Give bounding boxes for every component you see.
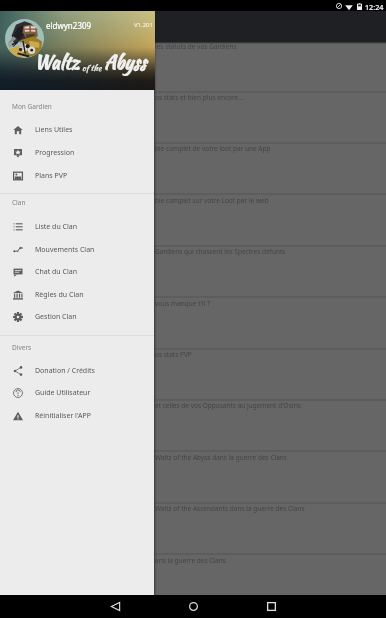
staticText: ble complet sur votre Loot par le web (155, 196, 269, 205)
button[interactable]: les statuts de vos Gardiens (0, 44, 386, 95)
button[interactable]: Chat du Clan (0, 260, 154, 283)
button[interactable]: Plans PVP (0, 164, 154, 187)
staticText: Divers (12, 343, 32, 352)
staticText: Liens Utiles (35, 125, 73, 135)
staticText: Progression (35, 148, 75, 158)
staticText: os stats PVP (155, 350, 192, 359)
button[interactable]: Mouvements Clan (0, 238, 154, 261)
button[interactable]: Back (95, 595, 135, 618)
staticText: 12:24 (365, 2, 384, 12)
staticText: Mon Gardien (12, 102, 52, 111)
button[interactable]: Règles du Clan (0, 283, 154, 306)
button[interactable]: Réinitialiser l'APP (0, 404, 154, 427)
staticText: Waltz (34, 49, 80, 76)
staticText: ans la guerre des Clans (155, 556, 226, 565)
button[interactable]: ans la guerre des Clans (0, 558, 386, 609)
staticText: Mouvements Clan (35, 245, 95, 255)
staticText: os stats et bien plus encore... (155, 93, 244, 102)
button[interactable]: Progression (0, 141, 154, 164)
staticText: Clan (12, 198, 26, 207)
staticText: les statuts de vos Gardiens (155, 42, 237, 51)
button[interactable]: Guide Utilisateur (0, 381, 154, 404)
staticText: of the (80, 62, 104, 74)
button[interactable]: Waltz of the Abyss dans la guerre des Cl… (0, 455, 386, 506)
staticText: Plans PVP (35, 171, 68, 181)
staticText: Waltz of the Ascendants dans la guerre d… (155, 504, 305, 513)
button[interactable]: Recent apps (251, 595, 291, 618)
staticText: Donation / Crédits (35, 366, 95, 376)
staticText: Waltz of the Abyss dans la guerre des Cl… (155, 453, 287, 462)
button[interactable]: os stats PVP (0, 352, 386, 403)
staticText: eldwyn2309 (46, 20, 92, 31)
button[interactable]: Donation / Crédits (0, 359, 154, 382)
staticText: ble complet de votre loot par une App (155, 144, 271, 153)
staticText: Liste du Clan (35, 222, 78, 232)
button[interactable]: Liens Utiles (0, 118, 154, 141)
staticText: Gardiens qui chassent les Spectres défun… (155, 247, 286, 256)
button[interactable]: os stats et bien plus encore... (0, 95, 386, 146)
staticText: et celles de vos Opposants au jugement d… (155, 401, 301, 410)
staticText: V1.201 (134, 21, 153, 29)
button[interactable]: Waltz of the Ascendants dans la guerre d… (0, 506, 386, 557)
staticText: Règles du Clan (35, 290, 84, 300)
button[interactable]: vous manque t'il ? (0, 301, 386, 352)
staticText: Réinitialiser l'APP (35, 411, 91, 421)
staticText: Guide Utilisateur (35, 388, 91, 398)
button[interactable]: et celles de vos Opposants au jugement d… (0, 403, 386, 454)
button[interactable]: ble complet sur votre Loot par le web (0, 198, 386, 249)
button[interactable]: Liste du Clan (0, 215, 154, 238)
staticText: Abyss (104, 49, 146, 76)
button[interactable]: ble complet de votre loot par une App (0, 146, 386, 197)
button[interactable]: Home (173, 595, 213, 618)
staticText: vous manque t'il ? (155, 299, 210, 308)
button[interactable]: Gardiens qui chassent les Spectres défun… (0, 249, 386, 300)
button[interactable]: Gestion Clan (0, 305, 154, 328)
staticText: Chat du Clan (35, 267, 77, 277)
staticText: Gestion Clan (35, 312, 77, 322)
